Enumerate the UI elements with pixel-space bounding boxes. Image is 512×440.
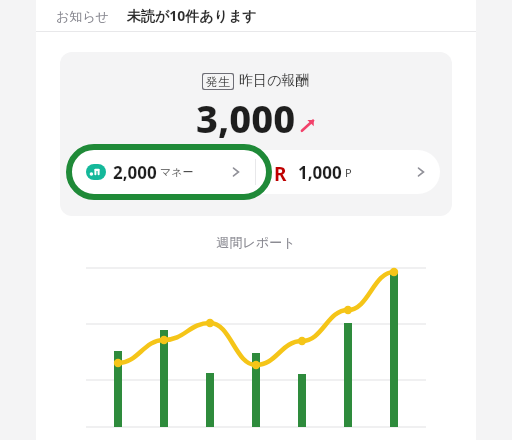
button[interactable]: マネー残高を表示: [66, 144, 272, 200]
staticText: 2,000: [113, 161, 157, 184]
staticText: お知らせ: [56, 8, 109, 24]
staticText: 未読が10件あります: [127, 6, 257, 25]
button[interactable]: お知らせ: [36, 0, 476, 31]
staticText: マネー: [160, 165, 194, 179]
staticText: P: [345, 165, 352, 180]
staticText: 1,000: [298, 161, 342, 184]
staticText: 週間レポート: [36, 234, 476, 250]
staticText: 発生: [206, 74, 230, 89]
staticText: 昨日の報酬: [239, 72, 310, 90]
staticText: 3,000: [196, 92, 296, 144]
button[interactable]: 2,000: [72, 150, 255, 194]
button[interactable]: R: [256, 150, 440, 194]
staticText: R: [274, 161, 287, 183]
